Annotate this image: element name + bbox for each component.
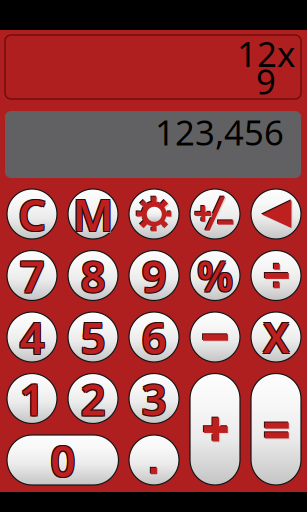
staticText: 1 [21, 371, 46, 429]
staticText: M [74, 186, 115, 245]
staticText: 2 [80, 369, 105, 428]
staticText: 3 [142, 370, 167, 429]
staticText: C [19, 186, 47, 245]
staticText: % [196, 247, 232, 302]
button[interactable]: 1 [7, 373, 57, 423]
staticText: 8 [81, 247, 106, 306]
button[interactable]: 3 [129, 373, 179, 423]
staticText: 3 [141, 369, 166, 428]
staticText: M [71, 184, 112, 242]
staticText: % [198, 249, 234, 304]
button[interactable]: Plus or minus [190, 189, 240, 239]
staticText: 3 [143, 371, 168, 429]
button[interactable]: 4 [7, 312, 57, 362]
staticText: 6 [142, 307, 167, 365]
button[interactable]: Clear [7, 189, 57, 239]
staticText: % [196, 249, 232, 304]
button[interactable]: 5 [68, 312, 118, 362]
staticText: 9 [142, 245, 167, 304]
button[interactable]: Percent [190, 250, 240, 300]
staticText: 6 [141, 308, 166, 366]
staticText: 7 [18, 245, 43, 304]
staticText: 4 [21, 309, 46, 368]
staticText: 0 [50, 431, 75, 489]
staticText: 12x [237, 30, 295, 76]
button[interactable]: Memory [68, 189, 118, 239]
staticText: X [263, 310, 289, 364]
staticText: 2 [81, 368, 106, 427]
staticText: 4 [18, 309, 43, 367]
button[interactable]: Equals [251, 373, 301, 485]
staticText: 0 [49, 430, 74, 488]
staticText: 9 [140, 247, 165, 306]
staticText: C [19, 184, 47, 242]
staticText: 9 [140, 245, 165, 304]
button[interactable]: Minus [190, 312, 240, 362]
staticText: C [18, 185, 46, 243]
staticText: 9 [141, 246, 166, 305]
staticText: 4 [20, 309, 45, 367]
staticText: X [264, 309, 290, 363]
staticText: 5 [81, 307, 106, 365]
staticText: 7 [21, 248, 46, 306]
button[interactable]: Settings [129, 189, 179, 239]
staticText: 9 [143, 248, 168, 306]
staticText: 6 [140, 309, 165, 367]
button[interactable]: Decimal point [129, 435, 179, 485]
button[interactable]: 9 [129, 250, 179, 300]
staticText: X [264, 311, 290, 366]
staticText: 3 [140, 370, 165, 429]
staticText: % [198, 247, 234, 302]
button[interactable]: 2 [68, 373, 118, 423]
staticText: 2 [79, 370, 104, 429]
staticText: 3 [140, 368, 165, 427]
staticText: 8 [82, 248, 107, 306]
button[interactable]: 0 [7, 435, 118, 485]
staticText: 7 [18, 247, 43, 306]
button[interactable]: 8 [68, 250, 118, 300]
staticText: 7 [20, 245, 45, 304]
staticText: 1 [20, 370, 45, 429]
staticText: 8 [79, 245, 104, 304]
staticText: 2 [81, 370, 106, 429]
staticText: % [198, 249, 234, 304]
staticText: M [73, 184, 114, 242]
staticText: 0 [49, 432, 74, 490]
staticText: C [17, 184, 45, 242]
staticText: 123,456 [155, 109, 284, 155]
staticText: 7 [19, 246, 44, 305]
button[interactable]: Plus [190, 373, 240, 485]
staticText: 4 [20, 307, 45, 365]
button[interactable]: Delete [251, 189, 301, 239]
staticText: X [262, 309, 288, 363]
staticText: 6 [142, 309, 167, 367]
staticText: 4 [18, 307, 43, 365]
staticText: 3 [142, 368, 167, 427]
staticText: C [19, 186, 47, 244]
staticText: 5 [81, 309, 106, 367]
staticText: 8 [79, 247, 104, 306]
button[interactable]: Multiply [251, 312, 301, 362]
staticText: 0 [51, 432, 76, 490]
staticText: 8 [80, 246, 105, 305]
button[interactable]: 7 [7, 250, 57, 300]
staticText: 0 [51, 430, 76, 488]
staticText: X [262, 311, 288, 365]
staticText: C [17, 186, 45, 244]
staticText: 6 [140, 307, 165, 365]
staticText: M [71, 186, 112, 244]
staticText: 9 [142, 247, 167, 306]
staticText: 5 [79, 307, 104, 365]
staticText: M [72, 185, 113, 243]
staticText: 6 [143, 309, 168, 368]
staticText: 2 [82, 371, 107, 429]
button[interactable]: 6 [129, 312, 179, 362]
staticText: 5 [79, 309, 104, 367]
staticText: 0 [52, 432, 77, 491]
button[interactable]: Divide [251, 250, 301, 300]
staticText: 4 [19, 308, 44, 366]
staticText: 1 [19, 369, 44, 428]
staticText: 5 [82, 309, 107, 368]
staticText: 1 [18, 368, 43, 427]
staticText: X [264, 311, 290, 365]
